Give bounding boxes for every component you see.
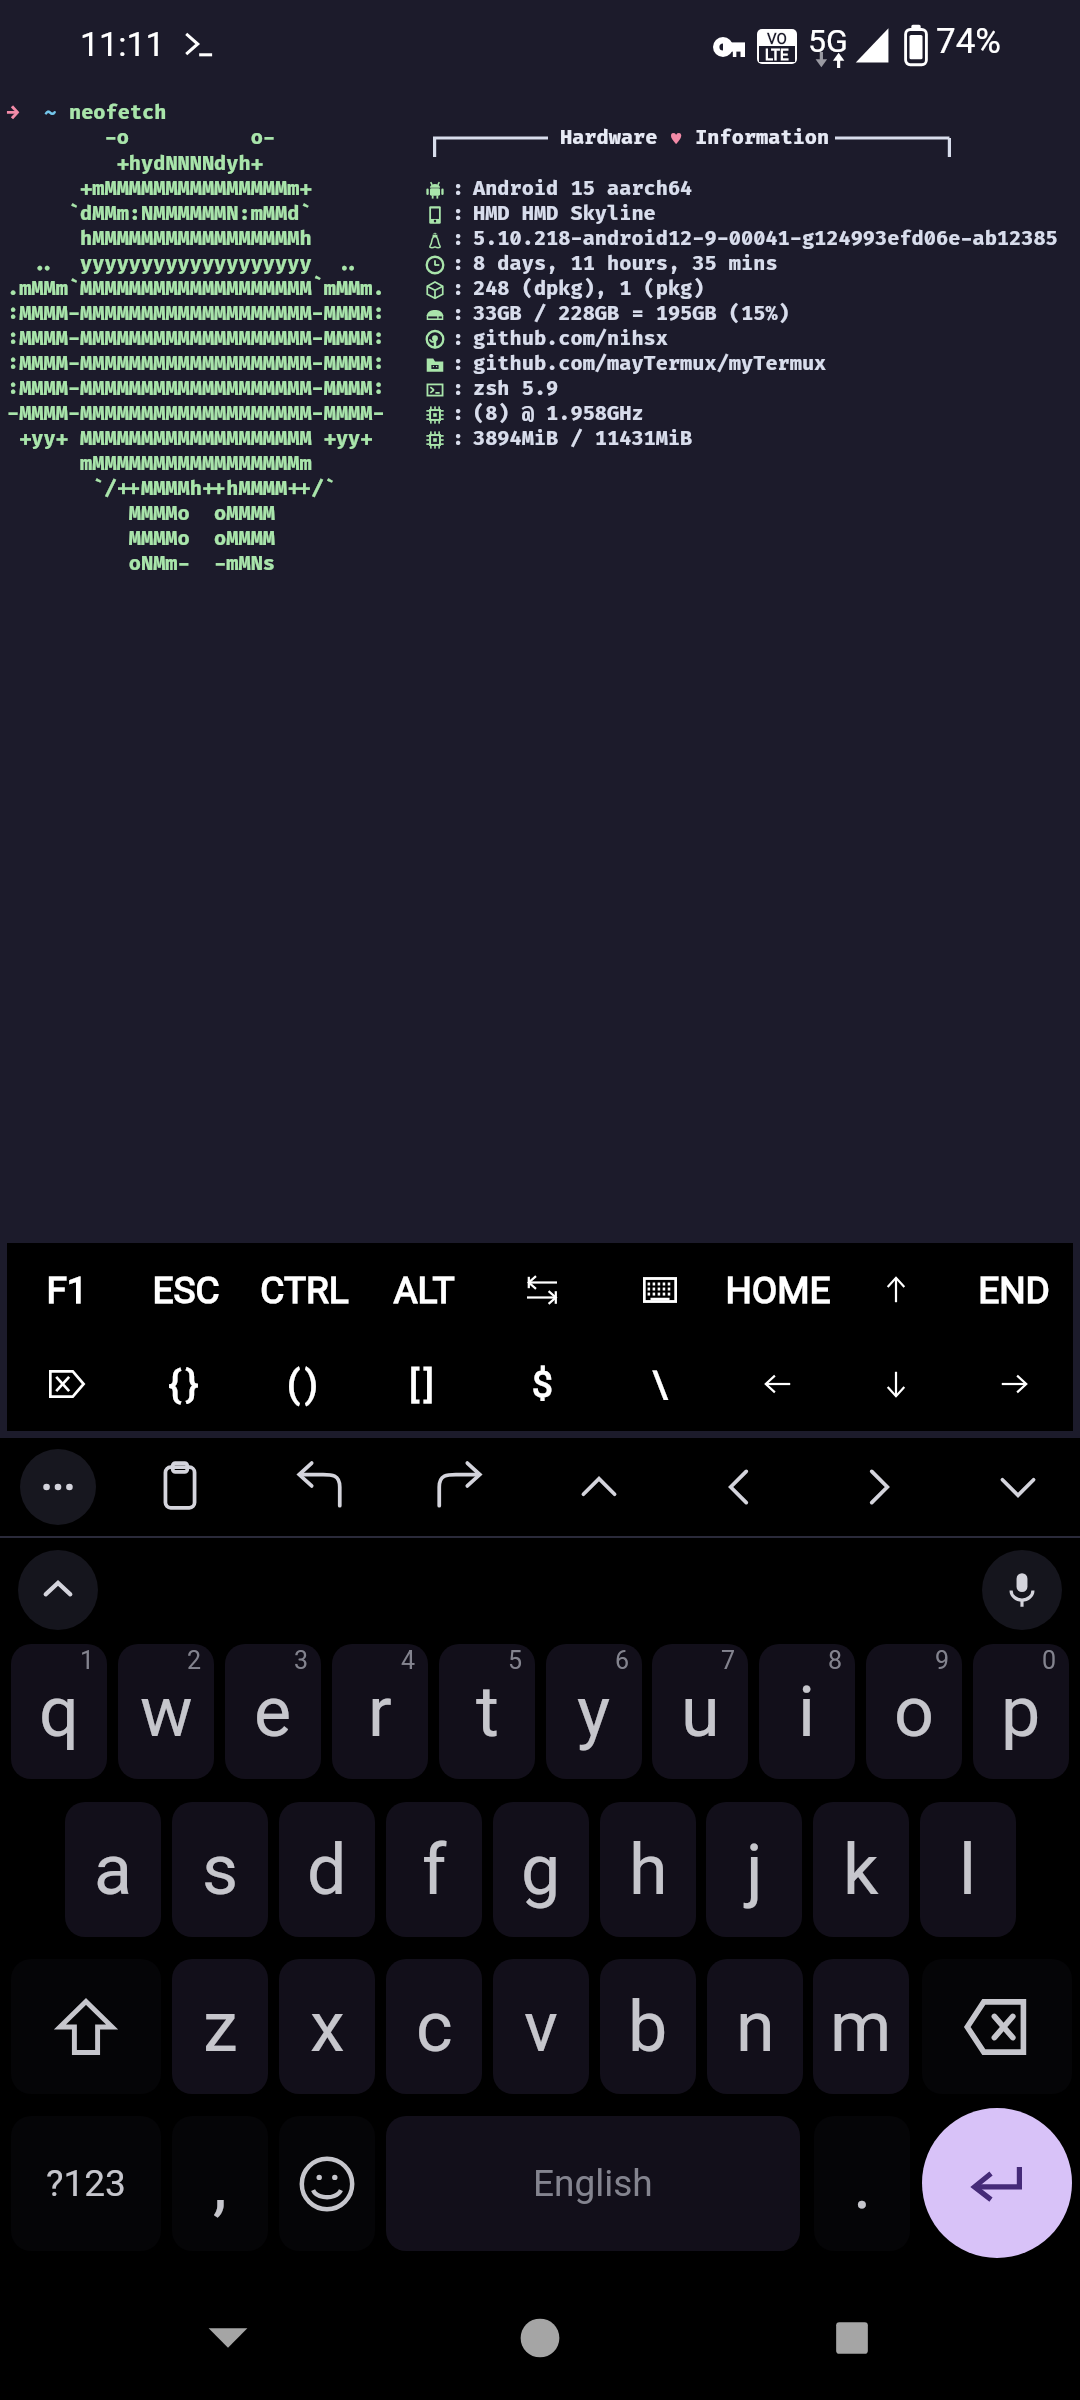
staticText: :	[452, 177, 465, 201]
staticText: :	[452, 277, 465, 301]
button[interactable]: e	[225, 1644, 321, 1779]
staticText: []	[409, 1363, 439, 1406]
button[interactable]: Down	[837, 1337, 955, 1431]
button[interactable]: Left	[691, 1439, 787, 1535]
staticText: t	[476, 1671, 499, 1753]
button[interactable]: F1	[7, 1243, 126, 1337]
staticText: f	[422, 1829, 447, 1911]
staticText: ~	[20, 101, 69, 125]
button[interactable]: x	[279, 1959, 375, 2094]
staticText: github.com/mayTermux/myTermux	[473, 352, 827, 376]
staticText: English	[533, 2162, 653, 2205]
button[interactable]: []	[364, 1337, 483, 1431]
button[interactable]: b	[600, 1959, 696, 2094]
button[interactable]: Redo	[411, 1439, 507, 1535]
staticText: :	[452, 202, 465, 226]
staticText: z	[203, 1986, 238, 2068]
button[interactable]: ?123	[11, 2116, 161, 2251]
staticText: {}	[168, 1363, 204, 1406]
button[interactable]: Show keyboard	[601, 1243, 719, 1337]
button[interactable]: w	[118, 1644, 214, 1779]
button[interactable]: Shift	[11, 1959, 161, 2094]
staticText: CTRL	[260, 1269, 349, 1312]
button[interactable]: a	[65, 1802, 161, 1937]
staticText: 3	[294, 1646, 309, 1675]
button[interactable]: i	[759, 1644, 855, 1779]
button[interactable]: j	[706, 1802, 802, 1937]
button[interactable]: Undo	[272, 1439, 368, 1535]
staticText: ?123	[46, 2162, 126, 2205]
button[interactable]: Emoji	[279, 2116, 375, 2251]
staticText: 5.10.218-android12-9-00041-g124993efd06e…	[473, 227, 1058, 251]
button[interactable]: HOME	[719, 1243, 837, 1337]
button[interactable]: Right	[955, 1337, 1073, 1431]
button[interactable]: t	[439, 1644, 535, 1779]
staticText: u	[681, 1671, 720, 1753]
button[interactable]: n	[707, 1959, 803, 2094]
button[interactable]: \	[601, 1337, 719, 1431]
button[interactable]: Backspace	[922, 1959, 1072, 2094]
staticText: 11:11	[80, 24, 165, 64]
button[interactable]: f	[386, 1802, 482, 1937]
button[interactable]: Left	[719, 1337, 837, 1431]
button[interactable]: ESC	[126, 1243, 245, 1337]
button[interactable]: .	[814, 2116, 910, 2251]
button[interactable]: Scroll up	[551, 1439, 647, 1535]
staticText: o	[894, 1671, 934, 1753]
button[interactable]: CTRL	[245, 1243, 364, 1337]
button[interactable]: g	[493, 1802, 589, 1937]
button[interactable]: ALT	[364, 1243, 483, 1337]
button[interactable]: r	[332, 1644, 428, 1779]
button[interactable]: Voice input	[982, 1550, 1062, 1630]
staticText: 4	[401, 1646, 416, 1675]
staticText: :	[452, 227, 465, 251]
button[interactable]: y	[546, 1644, 642, 1779]
button[interactable]: o	[866, 1644, 962, 1779]
button[interactable]: Right	[831, 1439, 927, 1535]
button[interactable]: k	[813, 1802, 909, 1937]
button[interactable]: d	[279, 1802, 375, 1937]
button[interactable]: z	[172, 1959, 268, 2094]
staticText: -o o- +hydNNNNdyh+ +mMMMMMMMMMMMMMMMm+ `…	[7, 126, 385, 576]
button[interactable]: q	[11, 1644, 107, 1779]
button[interactable]: ,	[172, 2116, 268, 2251]
button[interactable]: Recent apps	[807, 2293, 897, 2383]
staticText: →	[7, 101, 20, 125]
button[interactable]: Back	[183, 2293, 273, 2383]
staticText: ()	[287, 1363, 323, 1406]
staticText: :	[452, 427, 465, 451]
staticText: Information	[683, 126, 830, 150]
staticText: r	[368, 1671, 392, 1753]
staticText: 248 (dpkg), 1 (pkg)	[473, 277, 705, 301]
button[interactable]: s	[172, 1802, 268, 1937]
staticText: 74%	[936, 21, 1001, 62]
button[interactable]: English	[386, 2116, 800, 2251]
button[interactable]: {}	[126, 1337, 245, 1431]
staticText: 8 days, 11 hours, 35 mins	[473, 252, 778, 276]
button[interactable]: Up	[837, 1243, 955, 1337]
staticText: i	[798, 1671, 816, 1753]
staticText: :	[452, 302, 465, 326]
button[interactable]: m	[813, 1959, 909, 2094]
button[interactable]: Tab	[483, 1243, 601, 1337]
button[interactable]: p	[973, 1644, 1069, 1779]
staticText: m	[830, 1986, 892, 2068]
button[interactable]: More options	[20, 1449, 96, 1525]
button[interactable]: ()	[245, 1337, 364, 1431]
button[interactable]: Paste	[132, 1439, 228, 1535]
button[interactable]: Enter	[922, 2108, 1072, 2258]
button[interactable]: c	[386, 1959, 482, 2094]
button[interactable]: Scroll down	[970, 1439, 1066, 1535]
button[interactable]: h	[600, 1802, 696, 1937]
other: VPN	[713, 37, 745, 57]
button[interactable]: Delete	[7, 1337, 126, 1431]
button[interactable]: Home	[495, 2293, 585, 2383]
staticText: (8) @ 1.958GHz	[473, 402, 644, 426]
button[interactable]: v	[493, 1959, 589, 2094]
button[interactable]: END	[955, 1243, 1073, 1337]
button[interactable]: l	[920, 1802, 1016, 1937]
button[interactable]: u	[652, 1644, 748, 1779]
button[interactable]: Expand toolbar	[18, 1550, 98, 1630]
staticText: g	[521, 1829, 561, 1911]
button[interactable]: $	[483, 1337, 601, 1431]
